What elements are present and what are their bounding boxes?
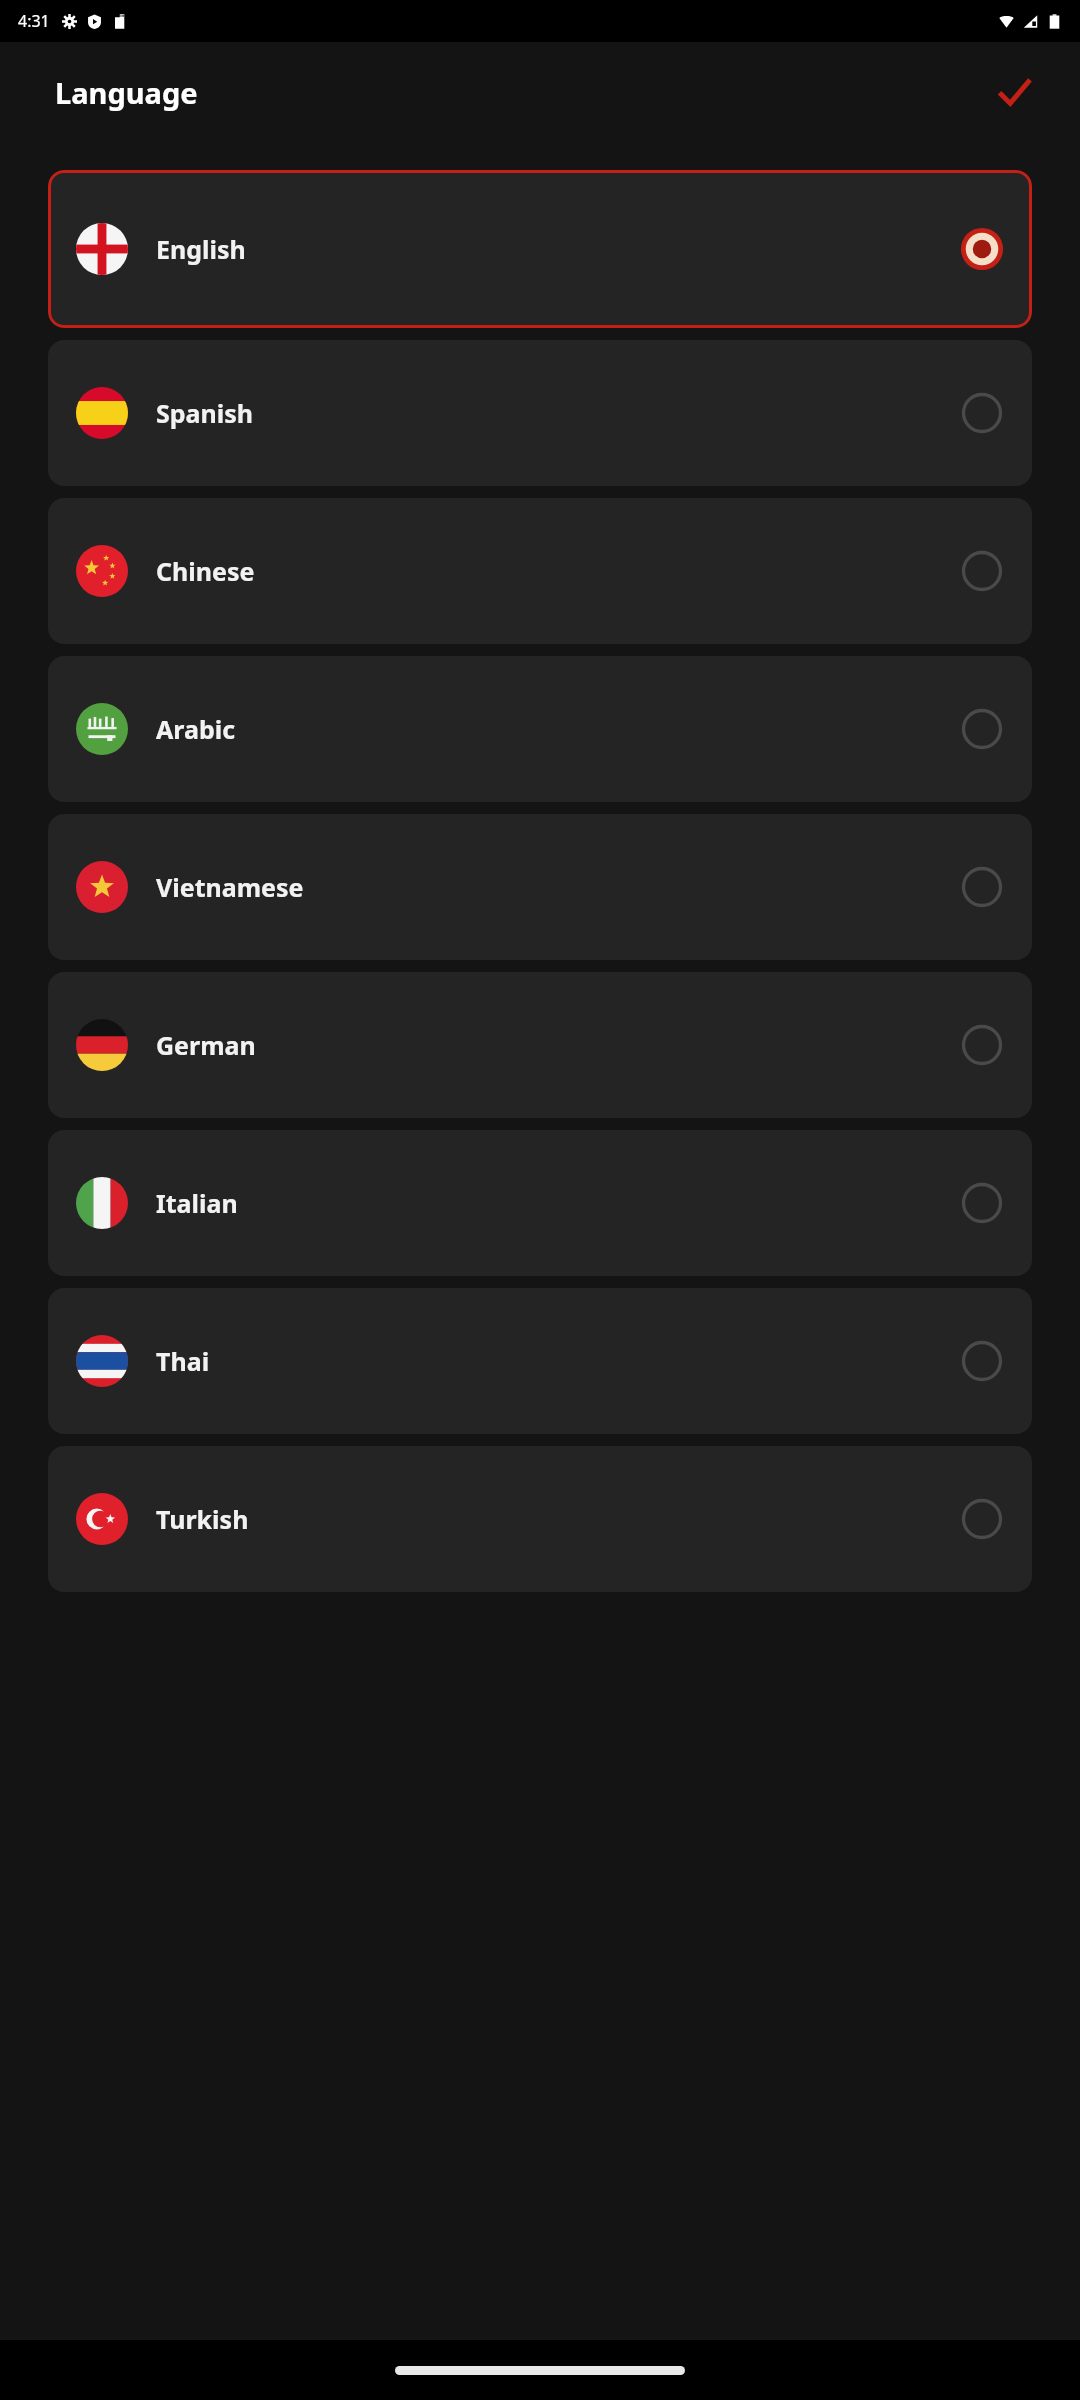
button[interactable]: Spanish: [48, 340, 1032, 486]
staticText: Chinese: [156, 554, 255, 588]
button[interactable]: Turkish: [48, 1446, 1032, 1592]
button[interactable]: English: [48, 170, 1032, 328]
staticText: German: [156, 1028, 256, 1062]
staticText: English: [156, 232, 246, 266]
staticText: Arabic: [156, 712, 236, 746]
staticText: Italian: [156, 1186, 238, 1220]
button[interactable]: Thai: [48, 1288, 1032, 1434]
button[interactable]: Vietnamese: [48, 814, 1032, 960]
staticText: Language: [55, 73, 198, 112]
button[interactable]: Confirm: [986, 64, 1042, 120]
staticText: 4:31: [18, 10, 50, 32]
button[interactable]: German: [48, 972, 1032, 1118]
staticText: Spanish: [156, 396, 254, 430]
button[interactable]: Chinese: [48, 498, 1032, 644]
staticText: Thai: [156, 1344, 210, 1378]
button[interactable]: Arabic: [48, 656, 1032, 802]
button[interactable]: Italian: [48, 1130, 1032, 1276]
staticText: Vietnamese: [156, 870, 304, 904]
staticText: Turkish: [156, 1502, 249, 1536]
